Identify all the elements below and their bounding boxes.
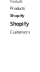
staticText: Shopify	[10, 20, 29, 27]
staticText: Shopify	[10, 13, 24, 18]
staticText: Products	[10, 5, 25, 11]
staticText: Customers	[10, 29, 30, 34]
staticText: Products	[10, 0, 22, 3]
